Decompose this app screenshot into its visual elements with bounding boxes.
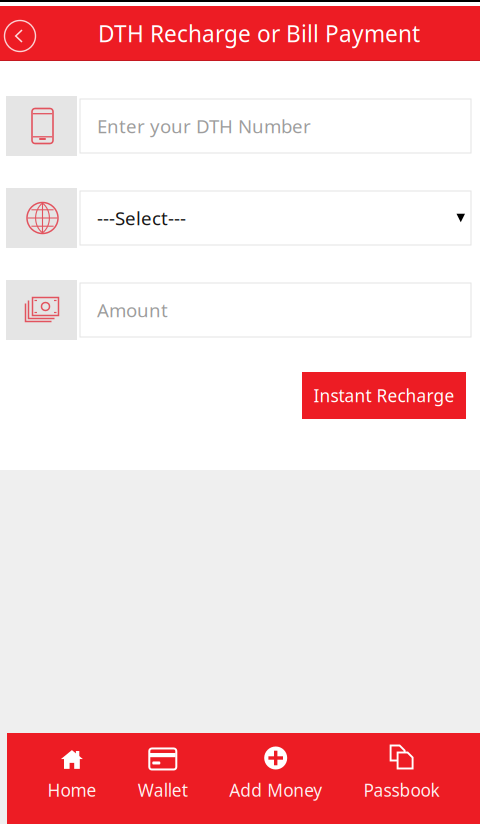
button[interactable]: Enter your DTH Number [80, 99, 471, 153]
button[interactable]: Amount [80, 283, 471, 337]
button[interactable]: Home [46, 729, 97, 824]
button[interactable]: Add Money [228, 729, 323, 824]
staticText: Passbook [364, 778, 440, 801]
button[interactable]: Back [0, 14, 40, 58]
staticText: Amount [97, 298, 168, 322]
staticText: Instant Recharge [313, 384, 454, 407]
button[interactable]: Passbook [363, 729, 441, 824]
button[interactable]: ---Select--- [80, 191, 471, 245]
staticText: Wallet [138, 778, 188, 801]
button[interactable]: Instant Recharge [302, 372, 466, 419]
staticText: ---Select--- [97, 206, 186, 230]
staticText: Home [47, 778, 96, 801]
staticText: Enter your DTH Number [97, 114, 311, 138]
staticText: Add Money [229, 778, 322, 801]
staticText: DTH Recharge or Bill Payment [98, 18, 420, 48]
button[interactable]: Wallet [137, 729, 189, 824]
